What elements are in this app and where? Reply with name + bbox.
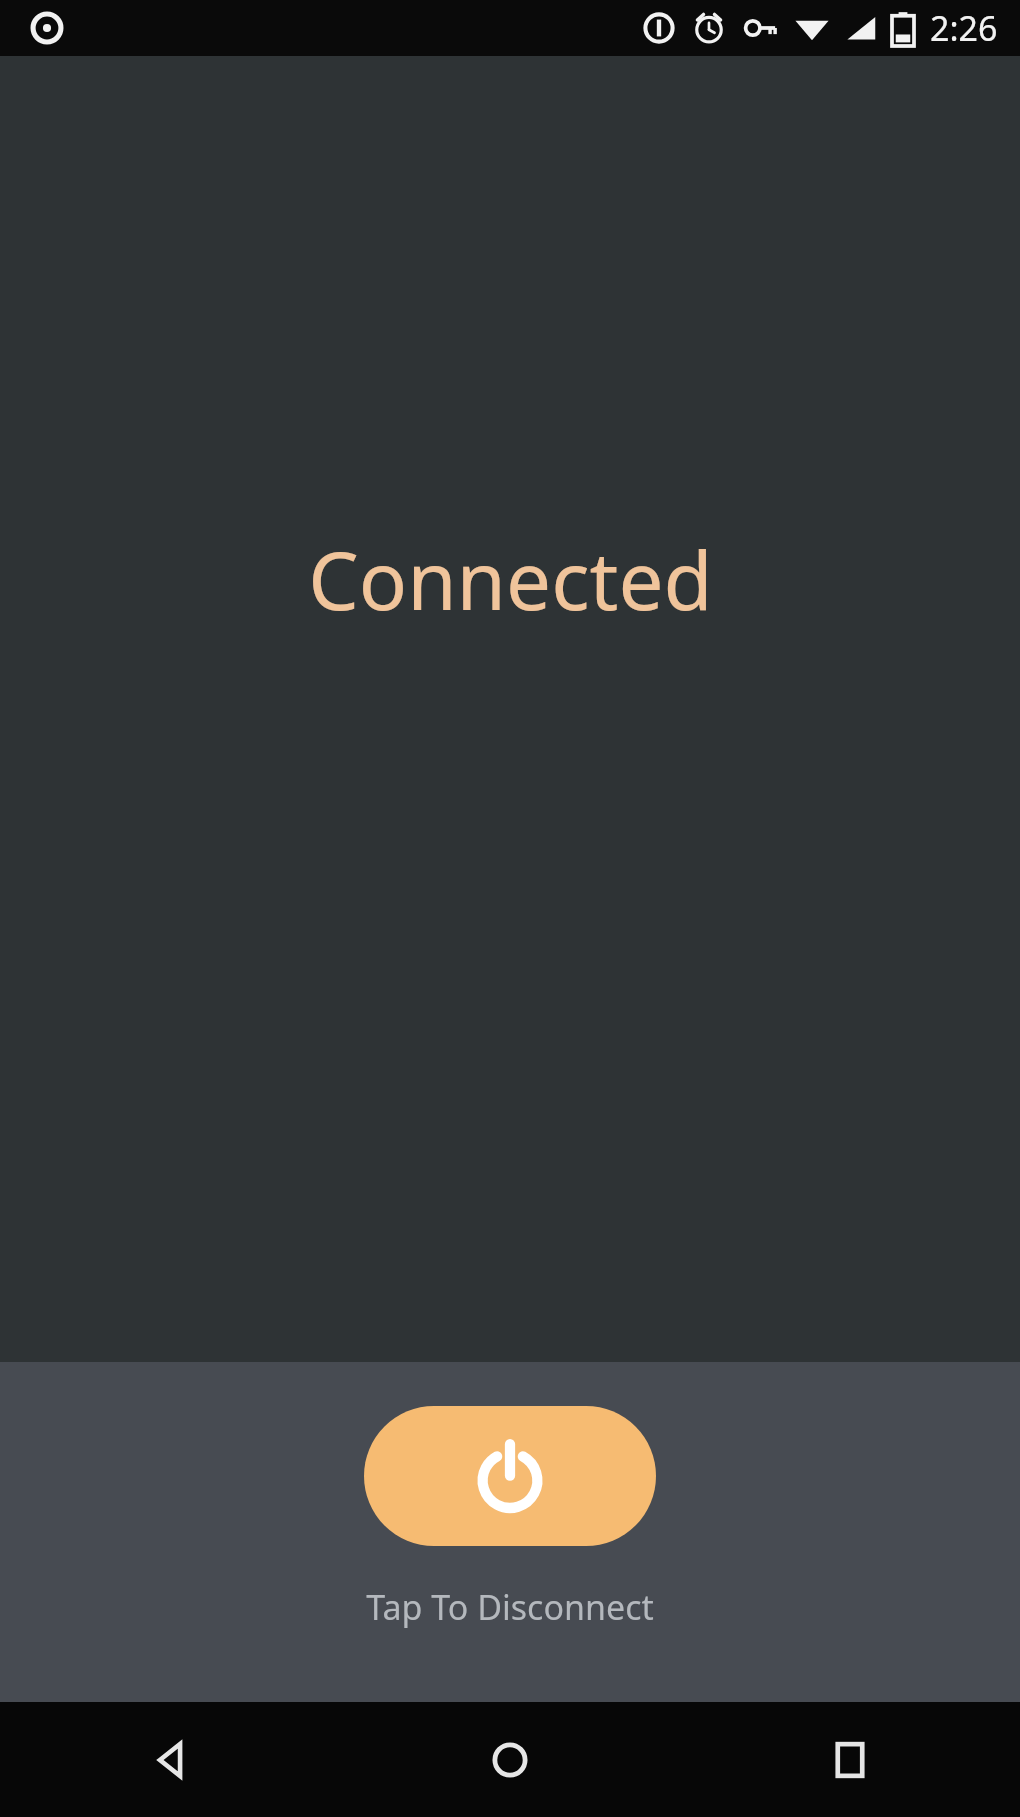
- button[interactable]: Home: [340, 1702, 680, 1817]
- button[interactable]: Back: [0, 1702, 340, 1817]
- staticText: 2:26: [930, 5, 998, 51]
- button[interactable]: Tap to disconnect: [364, 1406, 656, 1546]
- staticText: Connected: [308, 524, 713, 633]
- staticText: Tap To Disconnect: [366, 1584, 654, 1630]
- button[interactable]: Recent apps: [680, 1702, 1020, 1817]
